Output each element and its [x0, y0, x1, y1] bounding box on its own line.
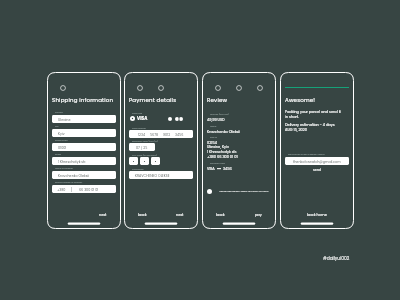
button[interactable]: pay — [254, 211, 263, 218]
button[interactable]: Help — [257, 85, 263, 91]
button[interactable]: Select Mastercard — [168, 117, 193, 121]
button[interactable]: 01001 — [52, 143, 116, 151]
button[interactable]: CVV digit — [151, 157, 160, 165]
staticText: payment card — [210, 162, 226, 165]
staticText: amount (incl. tax) — [210, 113, 229, 116]
staticText: VISA — [207, 166, 215, 171]
button[interactable]: +380 — [52, 185, 116, 193]
button[interactable]: Select VISA — [129, 116, 148, 121]
staticText: leave email to get a delivery report — [288, 153, 325, 156]
staticText: KRAVCHENKO OLEKSII — [135, 173, 170, 178]
staticText: expiration date (mm/yy) — [132, 140, 158, 143]
staticText: country — [55, 111, 64, 114]
staticText: 1 Khreschatyk str. — [58, 159, 87, 164]
staticText: 07 / 25 — [136, 145, 148, 150]
staticText: 66 300 01 01 — [79, 187, 99, 192]
staticText: +380 — [57, 187, 66, 192]
staticText: Shipping information — [52, 96, 114, 104]
staticText: name of receiver — [55, 167, 73, 170]
staticText: cardholder — [132, 168, 144, 171]
staticText: 3456 — [175, 132, 184, 137]
staticText: Packing your parcel and send it in short… — [285, 109, 341, 119]
staticText: Kyiv — [58, 131, 65, 136]
button[interactable]: send — [285, 167, 349, 174]
button[interactable]: Close — [60, 85, 66, 91]
staticText: Kravchenko Oleksii — [58, 173, 90, 178]
button[interactable]: I agree with privacy policy and trust yo… — [207, 189, 271, 194]
button[interactable]: back home — [306, 211, 328, 218]
staticText: 01001 — [58, 145, 67, 150]
button[interactable]: CVV digit — [140, 157, 149, 165]
button[interactable]: 07 / 25 — [129, 143, 155, 151]
button[interactable]: Back — [137, 85, 143, 91]
staticText: Payment details — [129, 96, 177, 104]
staticText: 49,99 USD — [207, 117, 225, 122]
staticText: ship to — [210, 136, 218, 139]
button[interactable]: Ukraine — [52, 115, 116, 123]
button[interactable]: Help — [158, 85, 164, 91]
staticText: 1234 — [138, 132, 146, 137]
staticText: CVV code (on the back) — [132, 154, 158, 157]
staticText: postal code — [55, 139, 68, 142]
button[interactable]: KRAVCHENKO OLEKSII — [129, 171, 193, 179]
button[interactable]: next — [175, 211, 185, 218]
button[interactable]: CVV digit — [129, 157, 138, 165]
staticText: phone number of receiver — [55, 181, 83, 184]
staticText: card type — [132, 112, 143, 115]
button[interactable]: Back — [215, 85, 221, 91]
staticText: 9012 — [163, 132, 171, 137]
staticText: card number — [132, 127, 146, 130]
staticText: I agree with privacy policy and trust yo… — [219, 190, 269, 193]
staticText: 3456 — [223, 166, 232, 171]
button[interactable]: thenkoforwatch@gmail.com — [285, 157, 349, 165]
button[interactable]: back — [137, 211, 148, 218]
staticText: street — [55, 153, 61, 156]
button[interactable]: Info — [236, 85, 242, 91]
staticText: thenkoforwatch@gmail.com — [293, 159, 341, 164]
staticText: VISA — [137, 116, 148, 121]
staticText: Awesome! — [285, 96, 316, 104]
button[interactable]: next — [98, 211, 108, 218]
button[interactable]: 1 Khreschatyk str. — [52, 157, 116, 165]
staticText: Delivery estimation - 4 days AUG 15, 202… — [285, 122, 335, 132]
staticText: Review — [207, 96, 228, 104]
button[interactable]: Kravchenko Oleksii — [52, 171, 116, 179]
staticText: city — [55, 125, 59, 128]
staticText: 02154 Ukraine, Kyiv 1 Khreschatyk str. +… — [207, 140, 238, 160]
button[interactable]: back — [215, 211, 226, 218]
staticText: 5678 — [150, 132, 159, 137]
staticText: name — [210, 125, 217, 128]
staticText: #dailyui002 — [323, 255, 350, 261]
staticText: Kravchenko Oleksii — [207, 129, 241, 134]
button[interactable]: 1234 — [129, 130, 193, 138]
button[interactable]: Kyiv — [52, 129, 116, 137]
staticText: Ukraine — [58, 117, 71, 122]
